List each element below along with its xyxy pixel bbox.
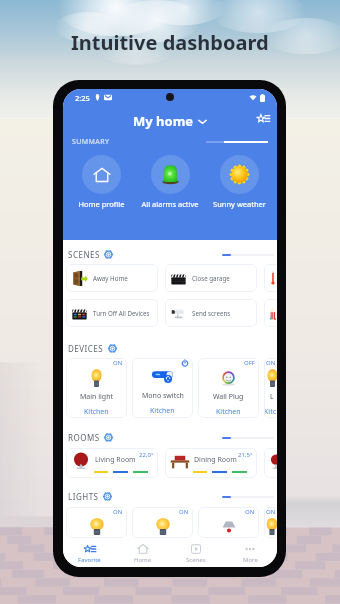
staticText: 21,5° (238, 451, 253, 459)
staticText: Living Room (95, 455, 136, 465)
button[interactable]: Settings (104, 433, 113, 442)
staticText: 22,0° (139, 451, 154, 459)
button[interactable]: Sunny weather (207, 155, 271, 209)
staticText: Scenes (186, 556, 206, 564)
staticText: Send screens (192, 309, 231, 317)
button[interactable]: ON (264, 507, 277, 538)
button[interactable]: Turn Off All Devices (66, 299, 158, 327)
staticText: Main light (80, 392, 113, 402)
staticText: Sunny weather (213, 199, 266, 209)
staticText: All alarms active (141, 199, 199, 209)
button[interactable]: More (223, 539, 277, 567)
button[interactable]: Living Room (66, 448, 158, 478)
staticText: Intuitive dashboard (71, 29, 269, 56)
button[interactable]: Close garage (165, 264, 257, 292)
staticText: Home (134, 556, 152, 564)
button[interactable]: OFF (198, 358, 259, 418)
staticText: Mono switch (142, 391, 184, 401)
staticText: Away Home (93, 274, 128, 282)
button[interactable]: ON (132, 507, 193, 538)
button[interactable]: Away Home (66, 264, 158, 292)
staticText: Kitchen (84, 407, 109, 417)
staticText: ON (266, 508, 276, 516)
button[interactable]: Dining Room (165, 448, 257, 478)
staticText: Wall Plug (213, 392, 244, 402)
staticText: Kitchen (150, 406, 175, 416)
button[interactable]: Settings (108, 344, 117, 353)
button[interactable]: ON (198, 507, 259, 538)
button[interactable]: All alarms active (138, 155, 202, 209)
staticText: DEVICES (68, 343, 104, 354)
staticText: OFF (244, 359, 255, 367)
staticText: L (270, 392, 274, 402)
button[interactable]: Home profile (69, 155, 133, 209)
button[interactable]: My home (133, 112, 207, 130)
button[interactable]: Home (116, 539, 169, 567)
button[interactable]: Settings (104, 250, 113, 259)
button[interactable]: ON (264, 358, 277, 418)
staticText: ON (245, 508, 255, 516)
button[interactable]: Favorite (63, 539, 116, 567)
button[interactable]: Send screens (165, 299, 257, 327)
staticText: My home (133, 112, 194, 130)
button[interactable] (264, 448, 277, 478)
staticText: Favorite (78, 556, 101, 564)
staticText: Home profile (78, 199, 125, 209)
staticText: 2:25 (75, 93, 90, 103)
button[interactable]: Mono switch (132, 358, 193, 418)
button[interactable] (264, 299, 277, 327)
staticText: Close garage (192, 274, 230, 282)
staticText: SUMMARY (72, 137, 110, 147)
staticText: ON (113, 359, 123, 367)
staticText: ON (113, 508, 123, 516)
button[interactable] (264, 264, 277, 292)
button[interactable]: Settings (103, 492, 112, 501)
staticText: Turn Off All Devices (93, 309, 150, 317)
button[interactable]: ON (66, 507, 127, 538)
staticText: LIGHTS (68, 491, 99, 502)
button[interactable]: Scenes (169, 539, 223, 567)
staticText: Kitchen (216, 407, 241, 417)
button[interactable]: Favorites (254, 109, 272, 127)
staticText: ROOMS (68, 432, 100, 443)
button[interactable]: ON (66, 358, 127, 418)
staticText: ON (179, 508, 189, 516)
staticText: More (243, 556, 258, 564)
staticText: Dining Room (194, 455, 237, 465)
staticText: Kitchen (264, 407, 277, 418)
staticText: SCENES (68, 249, 100, 260)
staticText: ON (266, 359, 276, 367)
